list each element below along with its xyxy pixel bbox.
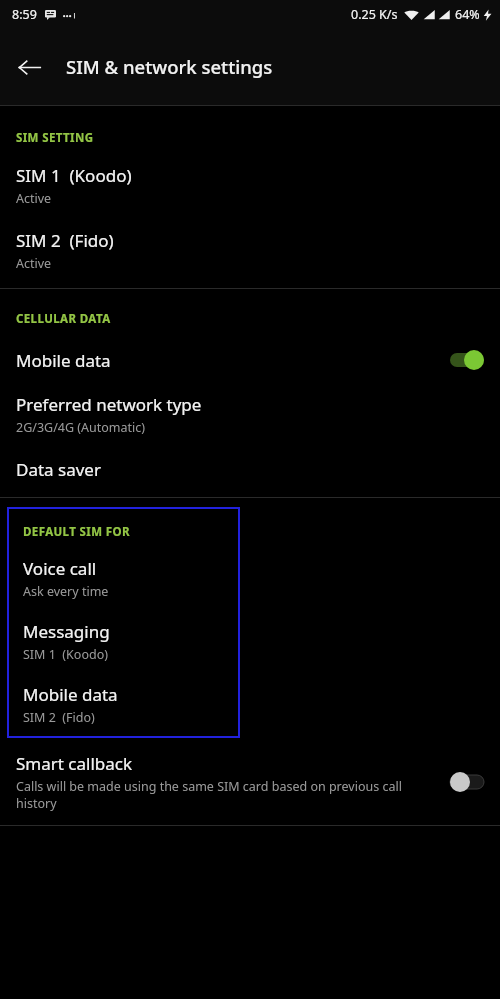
staticText: Active: [16, 255, 52, 272]
staticText: Messaging: [23, 620, 110, 643]
staticText: 8:59: [12, 6, 37, 23]
button[interactable]: Voice call: [7, 551, 240, 610]
button[interactable]: Smart callback toggle, off: [436, 767, 484, 797]
staticText: 0.25 K/s: [351, 6, 398, 23]
button[interactable]: Preferred network type: [0, 383, 500, 446]
staticText: SIM 2 (Fido): [23, 709, 95, 726]
staticText: Mobile data: [16, 349, 111, 372]
staticText: Mobile data: [23, 683, 118, 706]
staticText: Ask every time: [23, 583, 109, 600]
button[interactable]: SIM 2 (Fido): [0, 217, 500, 288]
button[interactable]: DEFAULT SIM FOR: [7, 507, 240, 738]
staticText: SIM & network settings: [66, 54, 273, 79]
staticText: SIM 2 (Fido): [16, 229, 114, 252]
staticText: 2G/3G/4G (Automatic): [16, 419, 146, 436]
staticText: Voice call: [23, 557, 97, 580]
button[interactable]: Data saver: [0, 446, 500, 497]
button[interactable]: Smart callback: [0, 738, 500, 825]
staticText: SIM 1 (Koodo): [23, 646, 108, 663]
staticText: Smart callback: [16, 752, 133, 775]
staticText: Calls will be made using the same SIM ca…: [16, 778, 426, 811]
button[interactable]: Messaging: [7, 610, 240, 673]
staticText: DEFAULT SIM FOR: [23, 524, 240, 540]
button[interactable]: Back: [8, 46, 50, 88]
staticText: Data saver: [16, 458, 101, 481]
staticText: CELLULAR DATA: [16, 311, 500, 327]
staticText: SIM SETTING: [16, 130, 500, 146]
staticText: Preferred network type: [16, 393, 202, 416]
button[interactable]: Mobile data toggle, on: [436, 345, 484, 375]
staticText: Active: [16, 190, 52, 207]
button[interactable]: Mobile data: [0, 337, 500, 383]
staticText: SIM 1 (Koodo): [16, 164, 132, 187]
button[interactable]: Mobile data: [7, 673, 240, 738]
button[interactable]: SIM 1 (Koodo): [0, 158, 500, 217]
staticText: 64%: [455, 6, 480, 23]
